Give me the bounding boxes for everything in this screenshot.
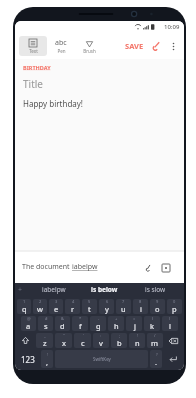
staticText: Happy birthday! xyxy=(23,98,84,109)
staticText: c xyxy=(81,338,85,348)
staticText: 2 xyxy=(39,299,42,304)
button[interactable]: ? xyxy=(150,350,162,368)
button[interactable]: 4 xyxy=(65,299,80,314)
button[interactable]: is below xyxy=(79,285,130,294)
staticText: j xyxy=(134,321,136,331)
button[interactable]: Enter xyxy=(163,350,183,368)
staticText: Brush xyxy=(83,48,96,54)
staticText: d xyxy=(60,321,65,331)
staticText: t xyxy=(88,304,91,314)
staticText: * xyxy=(79,316,82,321)
button[interactable]: 8 xyxy=(133,299,148,314)
button[interactable]: = xyxy=(126,316,142,331)
staticText: i xyxy=(140,304,142,314)
button[interactable]: 5 xyxy=(82,299,97,314)
button[interactable]: ) xyxy=(162,316,178,331)
staticText: Text xyxy=(29,48,38,54)
staticText: ) xyxy=(169,316,171,321)
button[interactable]: 7 xyxy=(116,299,131,314)
button[interactable]: Space xyxy=(55,350,148,368)
staticText: SwiftKey xyxy=(93,356,111,362)
button[interactable]: Attach file xyxy=(142,261,155,274)
staticText: 5 xyxy=(88,299,91,304)
staticText: u xyxy=(121,304,126,314)
button[interactable]: Attach xyxy=(148,37,166,55)
button[interactable]: 9 xyxy=(150,299,165,314)
staticText: g xyxy=(96,321,101,331)
staticText: iabelpw xyxy=(42,285,66,294)
button[interactable]: SAVE xyxy=(121,37,148,55)
button[interactable]: * xyxy=(72,316,88,331)
button[interactable]: 123 xyxy=(16,350,40,368)
staticText: r xyxy=(71,304,75,314)
staticText: " xyxy=(63,333,65,338)
button[interactable]: @ xyxy=(21,316,36,331)
button[interactable]: is slow xyxy=(130,285,181,294)
staticText: x xyxy=(62,338,66,348)
button[interactable]: ( xyxy=(144,316,160,331)
button[interactable]: 6 xyxy=(99,299,114,314)
button[interactable]: Shift xyxy=(16,333,35,348)
button[interactable]: ' xyxy=(74,333,91,348)
staticText: y xyxy=(105,304,109,314)
staticText: The document xyxy=(22,262,72,272)
button[interactable]: ! xyxy=(41,350,53,368)
button[interactable]: Insert image xyxy=(159,261,172,274)
staticText: + xyxy=(115,316,118,321)
button[interactable]: 1 xyxy=(17,299,31,314)
button[interactable]: / xyxy=(147,333,163,348)
staticText: 6 xyxy=(106,299,109,304)
button[interactable]: 2 xyxy=(33,299,47,314)
button[interactable]: 0 xyxy=(167,299,182,314)
staticText: k xyxy=(150,321,155,331)
button[interactable]: ! xyxy=(129,333,145,348)
staticText: ' xyxy=(83,333,84,338)
button[interactable]: # xyxy=(38,316,53,331)
button[interactable]: " xyxy=(55,333,72,348)
button[interactable]: 3 xyxy=(49,299,63,314)
button[interactable]: ; xyxy=(111,333,127,348)
staticText: w xyxy=(37,304,43,314)
staticText: abc xyxy=(55,38,67,48)
staticText: # xyxy=(45,316,48,321)
staticText: q xyxy=(22,304,27,314)
staticText: is slow xyxy=(145,285,166,294)
staticText: 8 xyxy=(139,299,142,304)
staticText: 7 xyxy=(122,299,125,304)
button[interactable]: & xyxy=(55,316,70,331)
staticText: Title xyxy=(23,77,43,91)
staticText: 4 xyxy=(72,299,75,304)
staticText: ( xyxy=(152,316,154,321)
button[interactable]: : xyxy=(93,333,109,348)
staticText: @ xyxy=(27,316,31,321)
button[interactable]: - xyxy=(90,316,106,331)
staticText: 0 xyxy=(173,299,176,304)
staticText: a xyxy=(26,321,31,331)
button[interactable]: More options xyxy=(166,39,180,53)
staticText: b xyxy=(117,338,122,348)
staticText: & xyxy=(61,316,64,321)
staticText: SAVE xyxy=(125,41,144,51)
staticText: f xyxy=(79,321,82,331)
staticText: ; xyxy=(119,333,121,338)
staticText: , xyxy=(46,357,49,367)
staticText: m xyxy=(151,338,159,348)
staticText: + xyxy=(18,285,23,295)
staticText: is below xyxy=(91,285,118,294)
staticText: 10:09 xyxy=(164,23,180,31)
staticText: _ xyxy=(44,333,46,338)
staticText: l xyxy=(169,321,171,331)
button[interactable]: + xyxy=(108,316,124,331)
staticText: . xyxy=(155,357,158,367)
button[interactable]: Brush xyxy=(75,36,103,56)
staticText: n xyxy=(135,338,140,348)
staticText: e xyxy=(54,304,59,314)
button[interactable]: Backspace xyxy=(164,333,183,348)
button[interactable]: _ xyxy=(36,333,53,348)
staticText: 1 xyxy=(23,299,26,304)
button[interactable]: iabelpw xyxy=(28,285,79,294)
staticText: BIRTHDAY xyxy=(23,64,51,71)
button[interactable]: Text xyxy=(19,36,47,56)
staticText: ? xyxy=(156,352,158,357)
button[interactable]: abc xyxy=(47,36,75,56)
